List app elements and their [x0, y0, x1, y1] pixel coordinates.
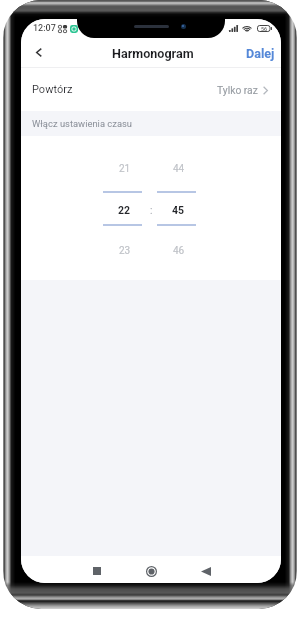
- button[interactable]: 23: [105, 244, 144, 258]
- staticText: 56: [261, 26, 268, 32]
- button[interactable]: 44: [159, 162, 198, 176]
- button[interactable]: 22: [105, 203, 144, 217]
- button[interactable]: Powtórz: [21, 68, 281, 111]
- button[interactable]: 45: [159, 203, 198, 217]
- staticText: Harmonogram: [112, 46, 194, 61]
- staticText: 46: [173, 245, 185, 257]
- staticText: 45: [172, 204, 185, 216]
- staticText: 21: [119, 163, 131, 175]
- button[interactable]: Back: [195, 560, 217, 582]
- staticText: Dalej: [246, 46, 275, 61]
- button[interactable]: 46: [159, 244, 198, 258]
- staticText: Tylko raz: [217, 84, 258, 96]
- staticText: 22: [118, 204, 131, 216]
- button[interactable]: Home: [140, 560, 162, 582]
- staticText: Powtórz: [32, 83, 73, 96]
- staticText: 23: [119, 245, 131, 257]
- staticText: 12:07: [33, 23, 56, 34]
- button[interactable]: 21: [105, 162, 144, 176]
- staticText: :: [150, 205, 153, 215]
- button[interactable]: Recent apps: [86, 560, 108, 582]
- staticText: Włącz ustawienia czasu: [32, 118, 133, 129]
- button[interactable]: Back: [27, 40, 51, 64]
- staticText: 44: [173, 163, 185, 175]
- button[interactable]: Dalej: [238, 41, 281, 66]
